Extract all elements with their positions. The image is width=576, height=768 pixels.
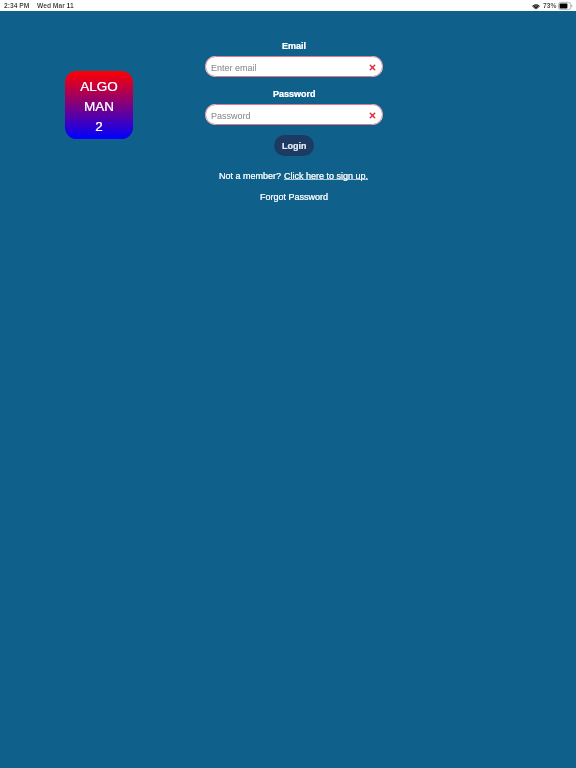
button[interactable]: ALGO MAN 2: [65, 71, 133, 139]
staticText: Click here to sign up.: [284, 171, 369, 181]
other: Clear Password: [367, 110, 378, 121]
button[interactable]: Click here to sign up.: [284, 171, 369, 181]
staticText: Login: [282, 141, 307, 151]
other: Clear Enter email: [367, 62, 378, 73]
button[interactable]: Password: [205, 104, 383, 125]
button[interactable]: Forgot Password: [260, 192, 329, 202]
button[interactable]: Enter email: [205, 56, 383, 77]
staticText: Password: [211, 111, 251, 121]
staticText: ALGO MAN 2: [80, 79, 118, 134]
staticText: 73%: [543, 2, 557, 9]
staticText: Not a member?: [219, 171, 284, 181]
staticText: Wed Mar 11: [37, 2, 74, 9]
staticText: Email: [282, 41, 307, 51]
button[interactable]: Login: [274, 135, 314, 156]
staticText: Password: [273, 89, 316, 99]
staticText: Forgot Password: [260, 192, 329, 202]
staticText: 2:34 PM: [4, 2, 30, 9]
staticText: Enter email: [211, 63, 257, 73]
